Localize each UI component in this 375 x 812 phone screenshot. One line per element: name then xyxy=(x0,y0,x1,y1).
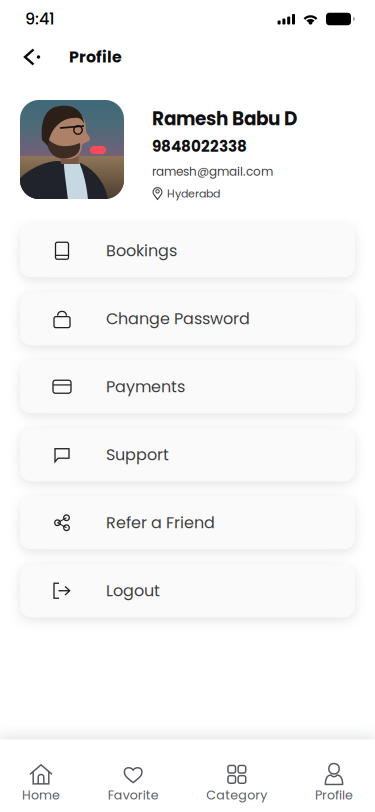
button[interactable]: Change Password xyxy=(20,292,355,345)
button[interactable]: Category xyxy=(206,763,267,804)
button[interactable]: Home xyxy=(22,763,60,804)
button[interactable]: Profile xyxy=(315,763,353,804)
staticText: Hyderabd xyxy=(167,186,220,201)
staticText: Ramesh Babu D xyxy=(152,106,297,132)
button[interactable]: Support xyxy=(20,428,355,481)
staticText: Home xyxy=(22,786,60,804)
staticText: Favorite xyxy=(108,786,159,804)
button[interactable]: Bookings xyxy=(20,224,355,277)
staticText: 9:41 xyxy=(25,8,55,30)
staticText: Profile xyxy=(315,786,353,804)
staticText: 9848022338 xyxy=(152,136,247,157)
staticText: Refer a Friend xyxy=(106,511,215,534)
button[interactable]: Favorite xyxy=(108,763,159,804)
staticText: Logout xyxy=(106,579,160,602)
staticText: Profile xyxy=(69,46,122,68)
staticText: Category xyxy=(206,786,267,804)
button[interactable]: Refer a Friend xyxy=(20,496,355,549)
button[interactable]: Logout xyxy=(20,564,355,617)
staticText: Bookings xyxy=(106,239,177,262)
staticText: Payments xyxy=(106,375,185,398)
staticText: Support xyxy=(106,443,169,466)
button[interactable]: Back xyxy=(16,40,50,74)
staticText: Change Password xyxy=(106,307,250,330)
button[interactable]: Payments xyxy=(20,360,355,413)
staticText: ramesh@gmail.com xyxy=(152,163,273,180)
